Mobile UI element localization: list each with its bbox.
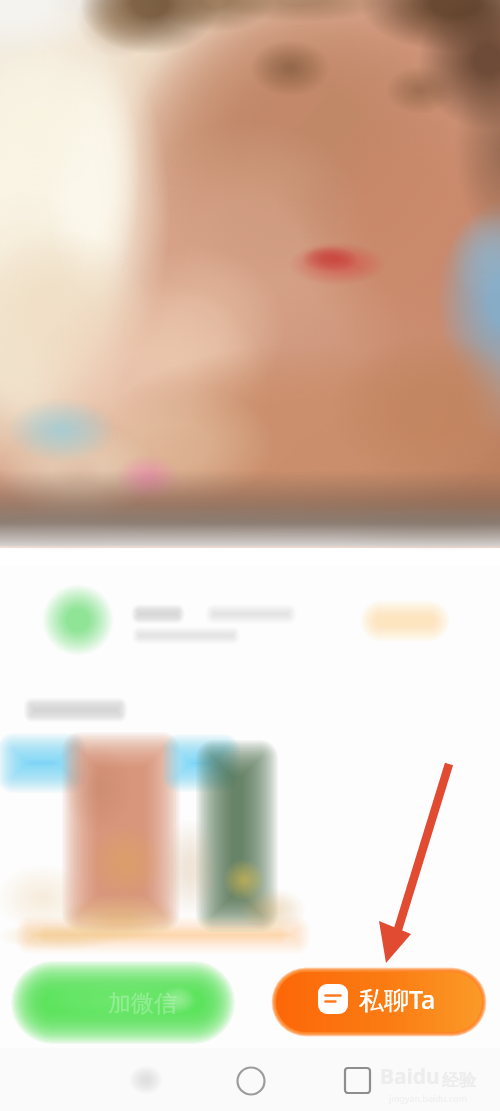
button[interactable]: Profile [0, 580, 500, 670]
button[interactable]: Follow [362, 604, 450, 638]
staticText: 经验 [442, 1070, 476, 1091]
button[interactable]: Photo 1 [8, 742, 86, 942]
button[interactable]: Photo 2 [94, 742, 186, 942]
button[interactable]: Photo 3 [194, 742, 278, 942]
staticText: Baidu [380, 1062, 440, 1091]
staticText: 加微信 [108, 989, 177, 1018]
button[interactable]: Recent apps [363, 1057, 411, 1105]
button[interactable]: Home [226, 1057, 274, 1105]
staticText: 私聊Ta [359, 982, 436, 1016]
staticText: jingyan.baidu.com [389, 1092, 467, 1104]
button[interactable]: 加微信 [24, 975, 222, 1031]
button[interactable]: 私聊Ta [274, 967, 480, 1031]
